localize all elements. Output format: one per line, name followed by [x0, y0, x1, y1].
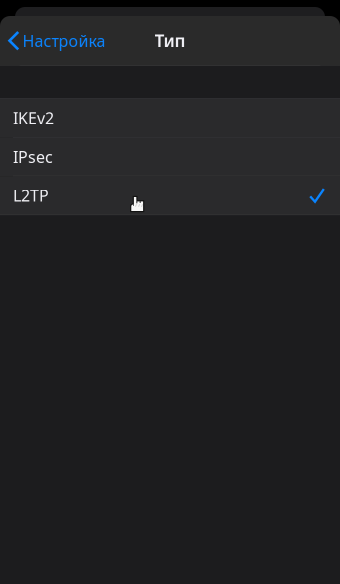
staticText: Настройка: [22, 30, 105, 51]
button[interactable]: Настройка: [0, 22, 115, 59]
staticText: IKEv2: [13, 107, 54, 129]
button[interactable]: IPsec: [0, 138, 340, 176]
button[interactable]: L2TP: [0, 176, 340, 214]
staticText: Тип: [154, 29, 185, 52]
button[interactable]: IKEv2: [0, 99, 340, 138]
staticText: L2TP: [13, 185, 49, 206]
staticText: IPsec: [13, 146, 53, 167]
